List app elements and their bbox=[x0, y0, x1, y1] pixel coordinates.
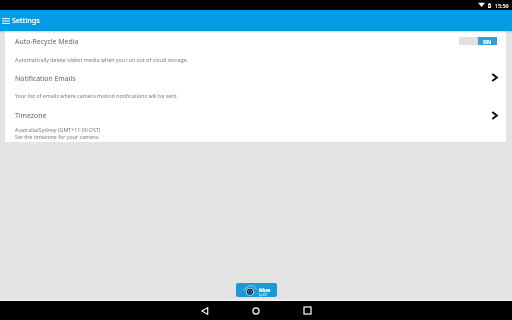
button[interactable]: Notification Emails bbox=[5, 69, 506, 105]
button[interactable]: Auto-Recycle Media bbox=[5, 31, 506, 69]
button[interactable]: Timezone bbox=[5, 105, 506, 142]
staticText: Set the timezone for your camera. bbox=[15, 133, 100, 140]
staticText: Timezone bbox=[15, 111, 47, 120]
button[interactable]: Home bbox=[246, 301, 266, 320]
button[interactable]: Back bbox=[195, 301, 215, 320]
button[interactable]: Recent apps bbox=[297, 301, 317, 320]
staticText: Automatically delete oldest media when y… bbox=[15, 56, 189, 63]
staticText: ON bbox=[483, 38, 492, 45]
button[interactable]: Open navigation drawer bbox=[0, 10, 11, 31]
staticText: Auto-Recycle Media bbox=[15, 37, 79, 46]
staticText: Your list of emails where camera motion … bbox=[15, 92, 178, 99]
button[interactable]: ON bbox=[459, 37, 497, 45]
button[interactable]: blue by ADT bbox=[236, 283, 277, 297]
staticText: 15:50 bbox=[495, 2, 509, 9]
staticText: Notification Emails bbox=[15, 74, 76, 83]
staticText: by ADT bbox=[259, 293, 268, 297]
staticText: Australia/Sydney (GMT+11:00 DST) bbox=[15, 126, 101, 133]
staticText: blue bbox=[259, 286, 271, 293]
staticText: Settings bbox=[12, 15, 40, 25]
